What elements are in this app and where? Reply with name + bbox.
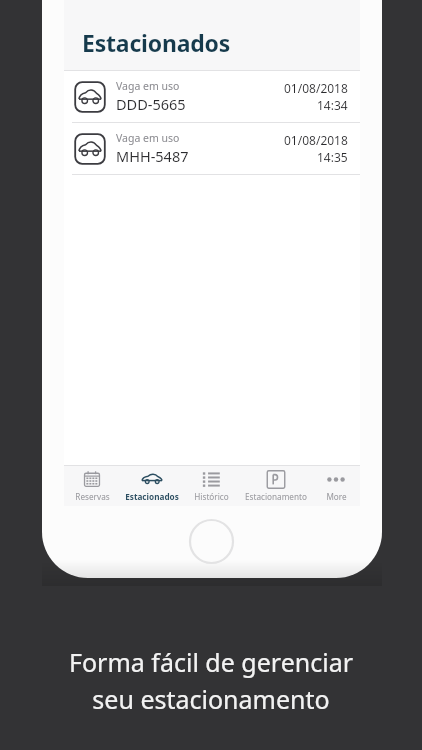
staticText: 14:35: [317, 149, 348, 165]
staticText: Vaga em uso: [116, 79, 180, 93]
staticText: Vaga em uso: [116, 131, 180, 145]
button[interactable]: Home: [189, 519, 234, 564]
staticText: 14:34: [317, 97, 348, 113]
staticText: Estacionados: [82, 27, 231, 58]
staticText: DDD-5665: [116, 94, 186, 114]
staticText: Reservas: [75, 491, 110, 502]
staticText: MHH-5487: [116, 146, 189, 166]
staticText: More: [326, 491, 347, 502]
button[interactable]: Vaga em uso: [64, 123, 360, 174]
staticText: Histórico: [194, 491, 229, 502]
staticText: Estacionamento: [245, 491, 307, 502]
button[interactable]: Estacionamento: [239, 466, 312, 506]
button[interactable]: Histórico: [183, 466, 239, 506]
button[interactable]: Estacionados: [120, 466, 183, 506]
button[interactable]: Reservas: [64, 466, 120, 506]
button[interactable]: More: [312, 466, 360, 506]
staticText: Forma fácil de gerenciar: [69, 645, 353, 679]
staticText: seu estacionamento: [92, 682, 330, 716]
staticText: Estacionados: [125, 491, 179, 502]
staticText: 01/08/2018: [284, 80, 348, 96]
button[interactable]: Vaga em uso: [64, 71, 360, 122]
staticText: 01/08/2018: [284, 132, 348, 148]
